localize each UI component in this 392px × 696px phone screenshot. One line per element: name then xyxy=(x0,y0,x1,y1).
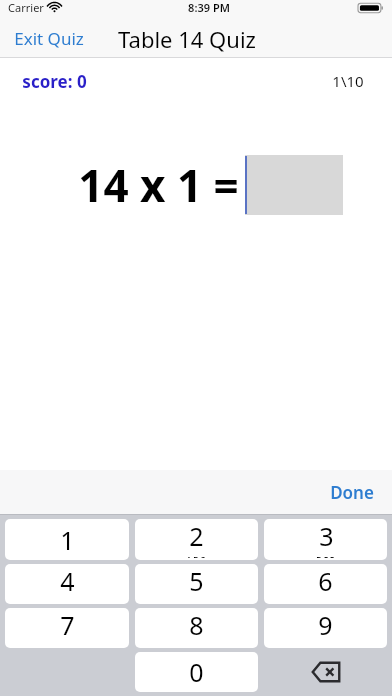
button[interactable]: Delete xyxy=(263,652,388,692)
staticText: 9 xyxy=(318,608,333,642)
button[interactable]: 2 xyxy=(135,519,258,560)
staticText: score: 0 xyxy=(22,70,87,93)
staticText: Done xyxy=(330,481,374,504)
staticText: 8:39 PM xyxy=(188,0,230,15)
staticText: 0 xyxy=(189,655,204,689)
staticText: 5 xyxy=(189,564,204,598)
staticText: 7 xyxy=(60,608,75,642)
button[interactable]: 9 xyxy=(264,608,387,648)
staticText: 2 xyxy=(189,519,204,553)
staticText: 6 xyxy=(318,564,333,598)
staticText: DEF xyxy=(316,554,336,558)
staticText: 14 x 1 = xyxy=(78,155,239,215)
button[interactable] xyxy=(245,155,343,215)
staticText: 3 xyxy=(319,519,334,553)
button[interactable]: 3 xyxy=(264,519,387,560)
button[interactable]: 7 xyxy=(5,608,129,648)
button[interactable]: Done xyxy=(322,475,382,510)
button[interactable]: 0 xyxy=(135,652,258,692)
staticText: Carrier xyxy=(8,0,44,15)
staticText: 8 xyxy=(189,608,204,642)
button[interactable]: 4 xyxy=(5,564,129,604)
button[interactable]: 5 xyxy=(135,564,258,604)
staticText: 4 xyxy=(60,564,75,598)
staticText: 1 xyxy=(60,523,75,557)
staticText: Table 14 Quiz xyxy=(118,24,256,54)
staticText: ABC xyxy=(186,554,207,558)
staticText: Exit Quiz xyxy=(14,27,84,50)
button[interactable]: 8 xyxy=(135,608,258,648)
staticText: 1\10 xyxy=(332,71,364,91)
button[interactable]: 6 xyxy=(264,564,387,604)
button[interactable]: 1 xyxy=(5,519,129,560)
button[interactable]: Exit Quiz xyxy=(10,23,88,54)
